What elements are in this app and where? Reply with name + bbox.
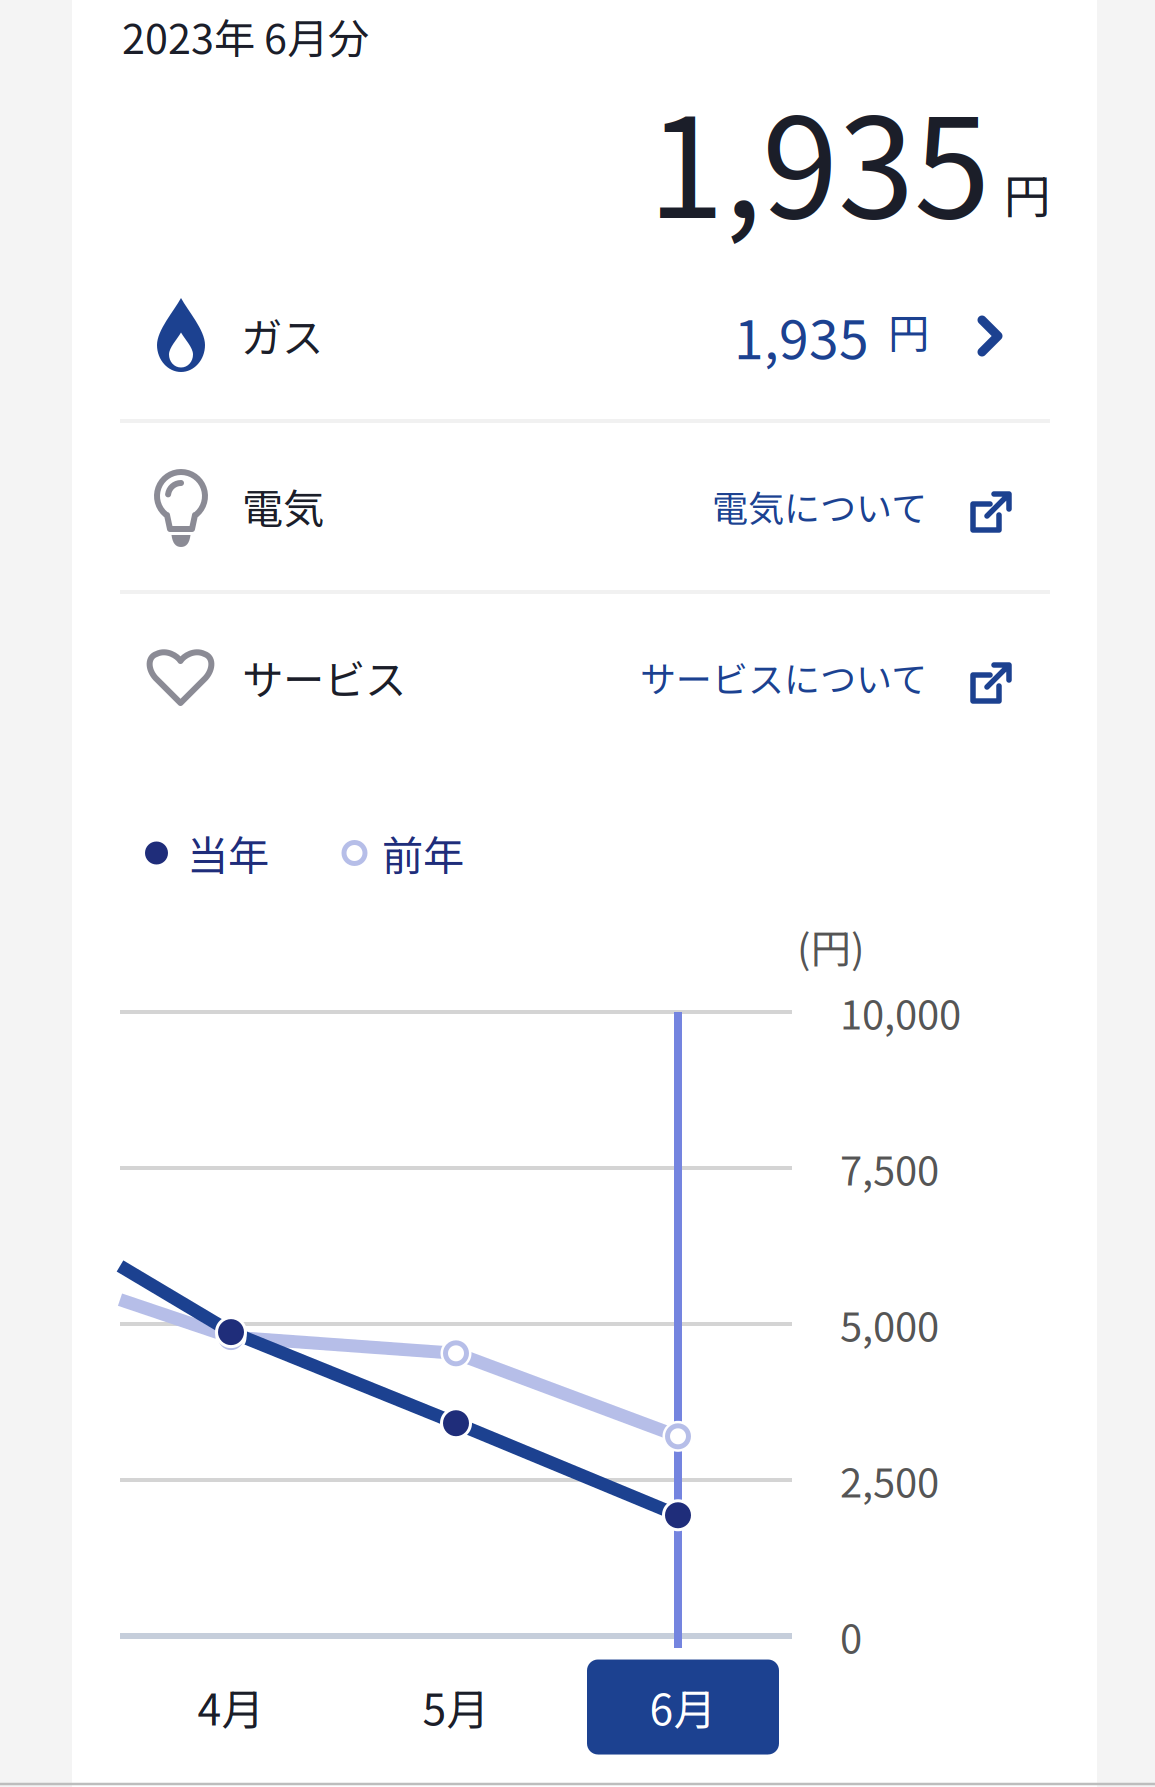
staticText: 2,500 [840, 1451, 939, 1509]
staticText: 当年 [187, 823, 269, 883]
staticText: 6月 [649, 1676, 716, 1738]
staticText: サービス [242, 647, 406, 707]
staticText: 前年 [382, 823, 464, 883]
staticText: 5,000 [840, 1295, 939, 1353]
staticText: 10,000 [840, 983, 961, 1041]
staticText: 4月 [197, 1676, 264, 1738]
staticText: (円) [797, 917, 865, 975]
button[interactable]: 電気 [72, 0, 1097, 1787]
staticText: ガス [241, 305, 323, 365]
staticText: 0 [840, 1607, 862, 1665]
staticText: 円 [888, 301, 929, 361]
staticText: 電気について [712, 480, 927, 532]
staticText: 円 [1004, 159, 1051, 227]
staticText: 7,500 [840, 1139, 939, 1197]
staticText: 1,935 [648, 59, 990, 257]
button[interactable]: 4月 [135, 1659, 327, 1754]
staticText: 2023年 6月分 [122, 6, 369, 66]
staticText: 1,935 [734, 297, 869, 375]
button[interactable]: ガス [72, 0, 1097, 1787]
staticText: 5月 [422, 1676, 489, 1738]
staticText: サービスについて [640, 651, 927, 703]
button[interactable]: 6月 [587, 1659, 779, 1754]
staticText: 電気 [242, 476, 324, 536]
button[interactable]: サービス [72, 0, 1097, 1787]
button[interactable]: 5月 [360, 1659, 552, 1754]
